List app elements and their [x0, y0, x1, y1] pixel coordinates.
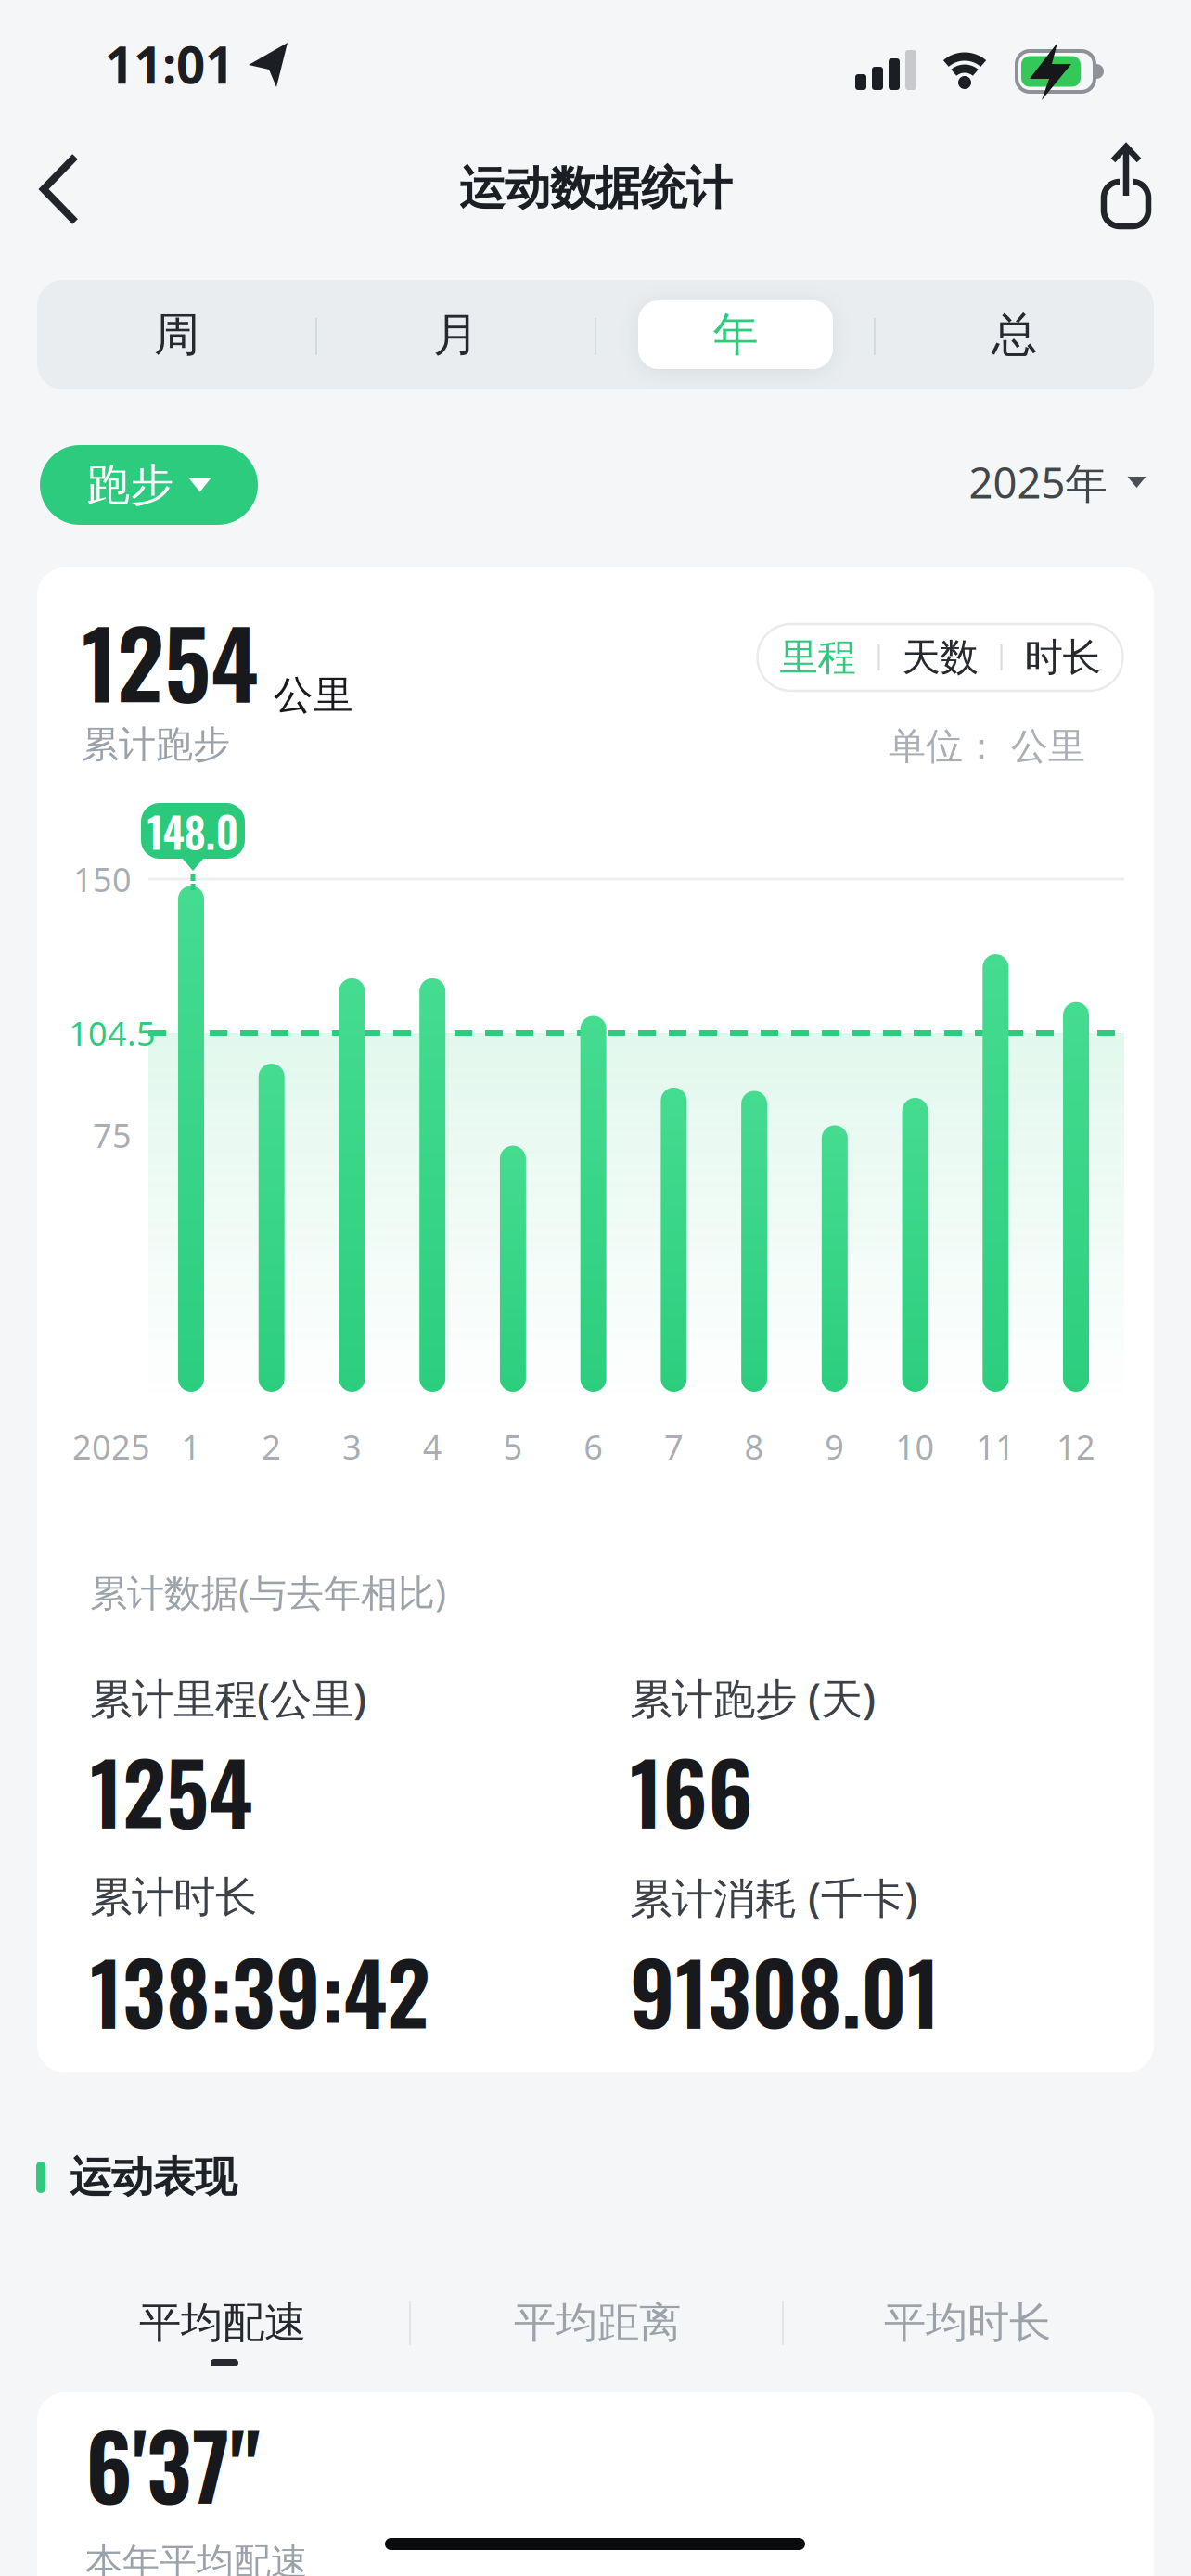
staticText: 运动表现: [70, 2151, 237, 2203]
staticText: 里程: [780, 634, 856, 681]
staticText: 累计消耗 (千卡): [630, 1869, 917, 1925]
staticText: 月: [433, 307, 479, 363]
button[interactable]: 2025年: [951, 445, 1164, 519]
staticText: 7: [664, 1424, 684, 1469]
staticText: 150: [73, 857, 132, 901]
button[interactable]: [34, 149, 90, 229]
staticText: 148.0: [147, 800, 239, 862]
button[interactable]: 年: [596, 280, 875, 389]
staticText: 10: [896, 1424, 935, 1469]
staticText: 累计跑步: [82, 722, 230, 767]
staticText: 总: [992, 307, 1037, 363]
button[interactable]: 平均配速: [74, 2286, 371, 2360]
staticText: 1254: [82, 592, 259, 729]
staticText: 运动数据统计: [459, 160, 732, 216]
staticText: 6'37": [85, 2398, 261, 2530]
staticText: 年: [713, 307, 758, 363]
staticText: 5: [503, 1424, 523, 1469]
staticText: 6: [584, 1424, 603, 1469]
staticText: 平均距离: [514, 2297, 681, 2349]
button[interactable]: 平均距离: [449, 2286, 746, 2360]
staticText: 2: [262, 1424, 281, 1469]
staticText: 4: [423, 1424, 442, 1469]
staticText: 3: [342, 1424, 362, 1469]
staticText: 11:01: [105, 30, 234, 98]
staticText: 跑步: [87, 458, 174, 511]
button[interactable]: 天数: [880, 624, 1000, 691]
button[interactable]: 跑步: [40, 445, 258, 525]
staticText: 91308.01: [630, 1927, 940, 2053]
staticText: 累计时长: [90, 1871, 257, 1923]
staticText: 累计里程(公里): [90, 1670, 366, 1726]
staticText: 75: [93, 1113, 132, 1157]
staticText: 138:39:42: [90, 1927, 430, 2053]
staticText: 天数: [902, 634, 978, 681]
staticText: 104.5: [69, 1011, 156, 1055]
staticText: 1: [181, 1424, 201, 1469]
staticText: 单位： 公里: [889, 724, 1085, 769]
staticText: 累计跑步 (天): [630, 1670, 876, 1726]
button[interactable]: 月: [316, 280, 595, 389]
button[interactable]: 周: [37, 280, 316, 389]
staticText: 12: [1057, 1424, 1095, 1469]
staticText: 9: [825, 1424, 844, 1469]
staticText: 时长: [1025, 634, 1101, 681]
staticText: 11: [976, 1424, 1015, 1469]
button[interactable]: 时长: [1002, 624, 1123, 691]
staticText: 2025年: [969, 454, 1107, 510]
button[interactable]: 总: [875, 280, 1154, 389]
button[interactable]: 平均时长: [819, 2286, 1116, 2360]
staticText: 166: [630, 1726, 753, 1853]
button[interactable]: [1096, 138, 1156, 235]
staticText: 1254: [90, 1726, 252, 1853]
staticText: 公里: [274, 671, 353, 720]
staticText: 累计数据(与去年相比): [90, 1567, 446, 1617]
button[interactable]: 里程: [757, 624, 878, 691]
staticText: 平均配速: [139, 2297, 306, 2349]
staticText: 平均时长: [884, 2297, 1051, 2349]
staticText: 周: [154, 307, 199, 363]
staticText: 2025: [72, 1424, 150, 1469]
staticText: 8: [744, 1424, 764, 1469]
staticText: 本年平均配速: [85, 2539, 308, 2576]
